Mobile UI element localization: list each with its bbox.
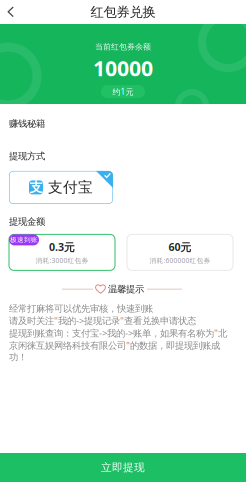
staticText: 消耗:600000红包券: [149, 256, 210, 265]
staticText: 提现金额: [9, 216, 45, 227]
staticText: 红包券兑换: [90, 4, 155, 20]
staticText: 经常打麻将可以优先审核，快速到账 请及时关注"我的->提现记录"查看兑换申请状态…: [9, 303, 227, 363]
button[interactable]: 60元: [127, 234, 233, 270]
button[interactable]: 0.3元: [9, 234, 115, 270]
button[interactable]: Back: [0, 0, 22, 24]
staticText: 温馨提示: [108, 283, 144, 295]
staticText: 当前红包券余额: [95, 42, 151, 52]
staticText: 立即提现: [101, 461, 145, 474]
staticText: 60元: [168, 240, 191, 254]
staticText: 支付宝: [48, 178, 93, 196]
staticText: 约1元: [112, 86, 133, 97]
staticText: 消耗:3000红包券: [35, 256, 88, 265]
staticText: 提现方式: [9, 150, 45, 162]
staticText: 极速到账: [10, 236, 38, 244]
staticText: 赚钱秘籍: [9, 118, 45, 129]
staticText: 支: [29, 179, 42, 196]
staticText: 10000: [93, 54, 153, 82]
staticText: 0.3元: [49, 240, 75, 254]
button[interactable]: 支: [9, 171, 113, 204]
button[interactable]: 立即提现: [0, 453, 246, 482]
